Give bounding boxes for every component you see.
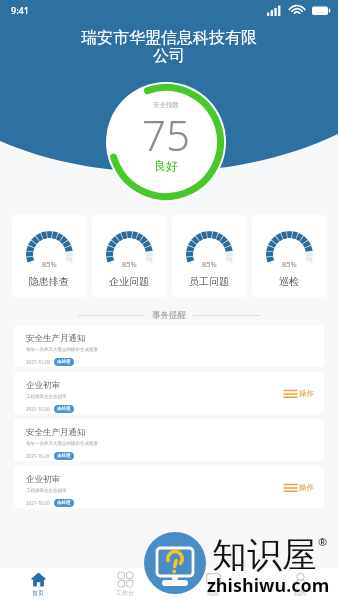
staticText: 每年一次的又大量点的操作生成发展 [26, 347, 98, 353]
staticText: 85% [122, 259, 137, 269]
button[interactable]: 我的 [280, 568, 320, 600]
staticText: 85% [282, 259, 297, 269]
staticText: 企业初审 [26, 474, 60, 485]
button[interactable]: 85% [172, 214, 246, 298]
button[interactable]: 85% [92, 214, 166, 298]
staticText: 未处理 [57, 500, 71, 506]
staticText: 未处理 [57, 406, 71, 412]
staticText: 工程师提交企业初审 [26, 488, 67, 494]
button[interactable]: 企业初审 [14, 466, 324, 508]
staticText: 2021-10-26 [26, 359, 50, 365]
staticText: 2021-10-26 [26, 500, 50, 506]
staticText: 75 [142, 106, 190, 163]
staticText: 隐患排查 [29, 275, 69, 288]
button[interactable]: 企业初审 [14, 372, 324, 414]
button[interactable]: 消息 [193, 568, 233, 600]
staticText: 企业初审 [26, 380, 60, 391]
staticText: 首页 [32, 589, 44, 597]
staticText: 工程师提交企业初审 [26, 394, 67, 400]
staticText: 安全生产月通知 [26, 427, 86, 438]
button[interactable]: 85% [12, 214, 86, 298]
button[interactable]: 操作 [284, 483, 314, 492]
staticText: 每年一次的又大量点的操作生成发展 [26, 441, 98, 447]
button[interactable]: 工作台 [105, 568, 145, 600]
staticText: 我的 [294, 589, 306, 597]
staticText: 安全生产月通知 [26, 333, 86, 344]
staticText: 工作台 [116, 589, 134, 597]
staticText: 2021-10-26 [26, 406, 50, 412]
staticText: 未处理 [57, 453, 71, 459]
button[interactable]: 首页 [18, 568, 58, 600]
staticText: 良好 [154, 158, 178, 173]
staticText: 员工问题 [189, 275, 229, 288]
staticText: 85% [42, 259, 57, 269]
staticText: 巡检 [279, 275, 299, 288]
button[interactable]: 安全生产月通知 [14, 419, 324, 461]
staticText: 操作 [299, 483, 314, 492]
staticText: 瑞安市华盟信息科技有限 公司 [44, 28, 294, 66]
staticText: 9:41 [11, 4, 29, 16]
staticText: zhishiwu.com [207, 573, 330, 598]
staticText: 85% [202, 259, 217, 269]
button[interactable]: 操作 [284, 389, 314, 398]
staticText: 未处理 [57, 359, 71, 365]
staticText: 安全指数 [153, 101, 179, 109]
staticText: 消息 [207, 589, 219, 597]
staticText: 企业问题 [109, 275, 149, 288]
button[interactable]: 85% [252, 214, 326, 298]
staticText: 操作 [299, 389, 314, 398]
staticText: 2021-10-26 [26, 453, 50, 459]
staticText: 事务提醒 [152, 310, 186, 321]
staticText: ® [318, 534, 328, 549]
staticText: 知识屋 [212, 533, 317, 577]
button[interactable]: 安全生产月通知 [14, 325, 324, 367]
